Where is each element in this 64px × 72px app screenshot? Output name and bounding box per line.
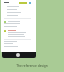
button[interactable] <box>4 8 31 11</box>
button[interactable] <box>4 11 31 14</box>
staticText: The reference design <box>16 64 48 68</box>
button[interactable] <box>4 14 31 17</box>
button[interactable] <box>4 20 31 23</box>
button[interactable] <box>4 5 31 8</box>
button[interactable]: Home <box>16 53 20 57</box>
